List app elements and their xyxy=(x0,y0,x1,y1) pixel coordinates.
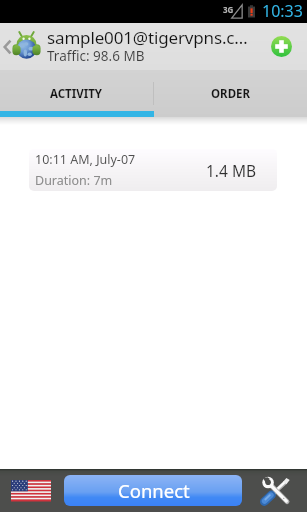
staticText: ORDER xyxy=(211,86,251,102)
staticText: ACTIVITY xyxy=(50,86,103,102)
staticText: Traffic: 98.6 MB xyxy=(47,47,145,65)
button[interactable]: 10:11 AM, July-07 xyxy=(29,149,277,191)
staticText: 1.4 MB xyxy=(206,160,257,181)
staticText: sample001@tigervpns.c… xyxy=(47,26,248,49)
staticText: Connect xyxy=(118,478,190,503)
staticText: 3G xyxy=(223,4,234,15)
button[interactable]: Back xyxy=(0,23,14,70)
button[interactable]: ORDER xyxy=(154,70,307,117)
button[interactable]: Settings xyxy=(243,469,307,512)
button[interactable]: Connect xyxy=(64,475,242,506)
button[interactable]: ACTIVITY xyxy=(0,70,153,117)
staticText: Duration: 7m xyxy=(35,172,113,189)
button[interactable]: Country xyxy=(0,469,62,512)
staticText: 10:33 xyxy=(262,0,303,22)
staticText: 10:11 AM, July-07 xyxy=(35,151,136,168)
button[interactable]: Add xyxy=(256,23,307,70)
